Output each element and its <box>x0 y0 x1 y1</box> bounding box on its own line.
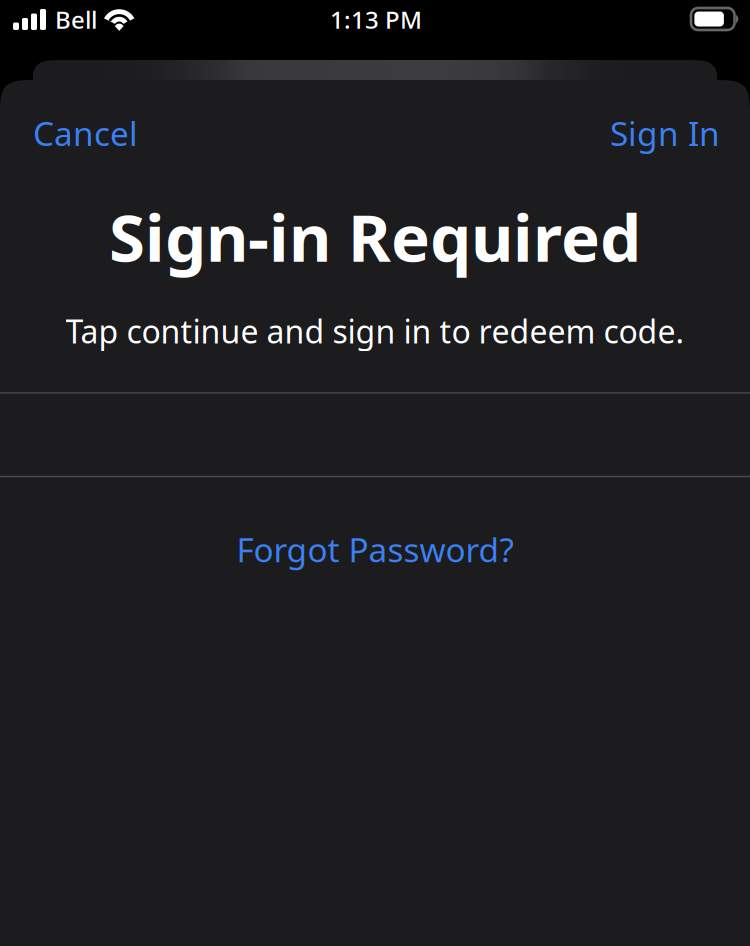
staticText: Sign-in Required <box>109 193 641 280</box>
staticText: Sign In <box>610 111 720 155</box>
staticText: Bell <box>55 3 97 35</box>
button[interactable]: Forgot Password? <box>0 507 750 592</box>
staticText: 1:13 PM <box>330 3 422 35</box>
button[interactable]: Cancel <box>0 80 160 186</box>
staticText: Cancel <box>33 111 138 155</box>
staticText: Forgot Password? <box>236 527 513 572</box>
staticText: Tap continue and sign in to redeem code. <box>65 310 684 352</box>
button[interactable]: Sign In <box>588 80 750 186</box>
